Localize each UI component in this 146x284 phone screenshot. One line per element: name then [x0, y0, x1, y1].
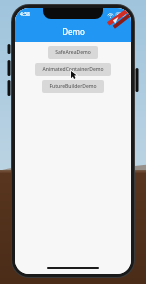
- staticText: 4:58: [20, 11, 30, 18]
- staticText: AnimatedContainerDemo: [42, 66, 104, 73]
- staticText: Demo: [62, 26, 85, 37]
- staticText: SafeAreaDemo: [55, 49, 91, 56]
- button[interactable]: AnimatedContainerDemo: [35, 63, 111, 76]
- button[interactable]: SafeAreaDemo: [48, 46, 98, 59]
- button[interactable]: FutureBuilderDemo: [42, 80, 104, 93]
- staticText: FutureBuilderDemo: [49, 83, 97, 90]
